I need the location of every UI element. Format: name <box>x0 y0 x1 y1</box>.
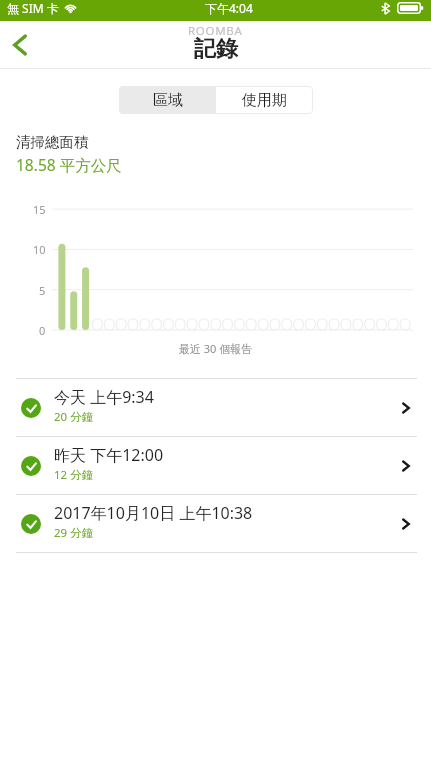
staticText: 20 分鐘 <box>54 409 94 425</box>
staticText: 記錄 <box>194 35 238 63</box>
staticText: 清掃總面積 <box>16 133 89 151</box>
button[interactable]: 使用期 <box>216 86 313 114</box>
staticText: 無 SIM 卡 <box>7 0 59 16</box>
staticText: 0 <box>39 323 46 337</box>
staticText: 最近 30 個報告 <box>0 341 431 356</box>
button[interactable]: 今天 上午9:34 <box>0 379 431 436</box>
button[interactable]: 2017年10月10日 上午10:38 <box>0 495 431 552</box>
staticText: ROOMBA <box>188 23 243 39</box>
button[interactable]: Back <box>0 21 48 69</box>
staticText: 10 <box>33 242 46 256</box>
staticText: 18.58 平方公尺 <box>16 154 122 175</box>
staticText: 5 <box>39 283 46 297</box>
staticText: 12 分鐘 <box>54 467 94 483</box>
staticText: 下午4:04 <box>205 0 253 16</box>
staticText: 區域 <box>153 91 183 110</box>
staticText: 使用期 <box>242 91 287 110</box>
button[interactable]: 區域 <box>119 86 216 114</box>
staticText: 昨天 下午12:00 <box>54 444 164 466</box>
staticText: 29 分鐘 <box>54 525 94 541</box>
staticText: 2017年10月10日 上午10:38 <box>54 502 253 524</box>
staticText: 今天 上午9:34 <box>54 386 154 408</box>
staticText: 15 <box>33 202 46 216</box>
button[interactable]: 昨天 下午12:00 <box>0 437 431 494</box>
